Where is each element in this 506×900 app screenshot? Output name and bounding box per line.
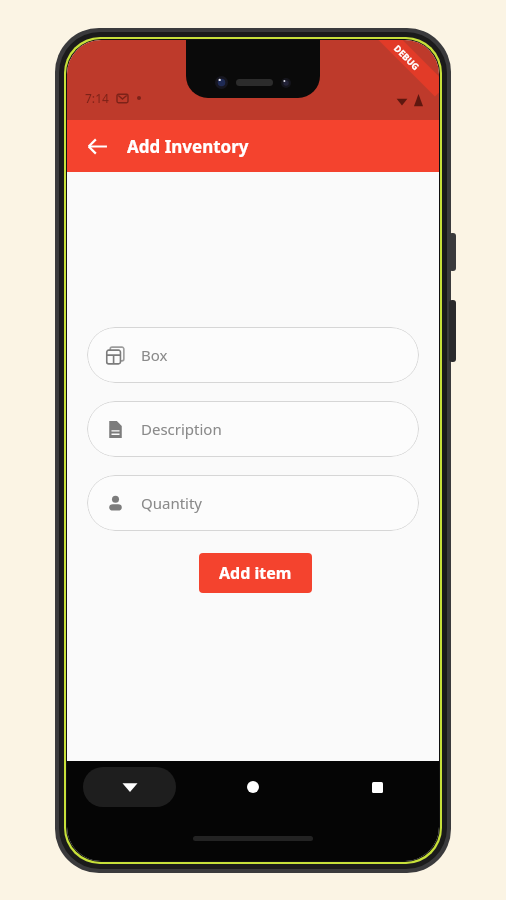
staticText: Add Inventory xyxy=(127,135,249,158)
button[interactable]: Home xyxy=(233,767,273,807)
staticText: Description xyxy=(141,419,222,439)
button[interactable]: Box xyxy=(87,327,419,383)
staticText: Box xyxy=(141,345,168,365)
staticText: DEBUG xyxy=(392,42,422,72)
staticText: 7:14 xyxy=(85,90,109,106)
button[interactable]: Add item xyxy=(199,553,312,593)
button[interactable]: Back xyxy=(83,767,176,807)
button[interactable]: Back xyxy=(75,124,119,168)
staticText: Add item xyxy=(219,562,292,584)
staticText: Quantity xyxy=(141,493,203,513)
button[interactable]: Quantity xyxy=(87,475,419,531)
button[interactable]: Recent apps xyxy=(357,767,397,807)
button[interactable]: Description xyxy=(87,401,419,457)
